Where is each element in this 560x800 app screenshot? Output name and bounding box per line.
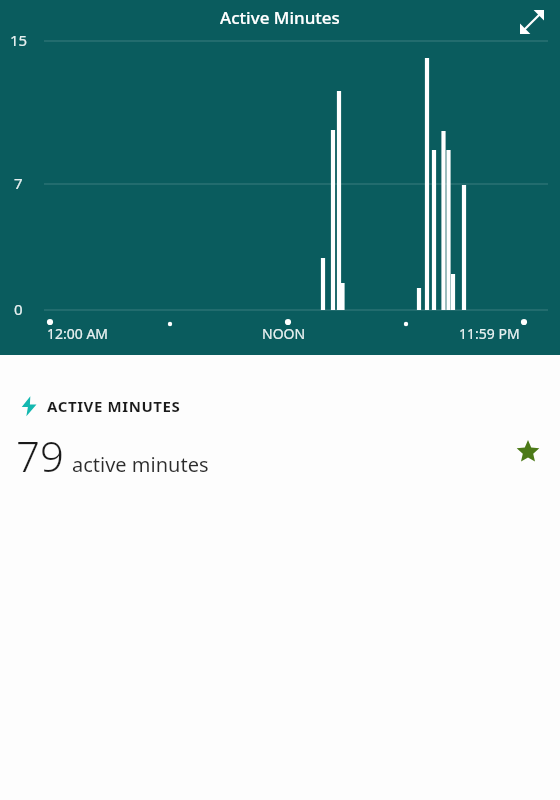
button[interactable]: ACTIVE MINUTES	[0, 355, 560, 480]
button[interactable]: Expand chart	[512, 2, 552, 42]
staticText: Active Minutes	[0, 6, 560, 29]
staticText: ACTIVE MINUTES	[47, 396, 181, 416]
staticText: 15	[10, 30, 28, 50]
button[interactable]: Goal achieved star	[506, 430, 550, 474]
staticText: 11:59 PM	[459, 324, 520, 343]
staticText: 0	[14, 299, 23, 319]
staticText: 12:00 AM	[47, 324, 109, 343]
staticText: NOON	[262, 324, 306, 343]
staticText: 79	[16, 427, 64, 484]
staticText: active minutes	[72, 451, 209, 478]
staticText: 7	[14, 173, 23, 193]
